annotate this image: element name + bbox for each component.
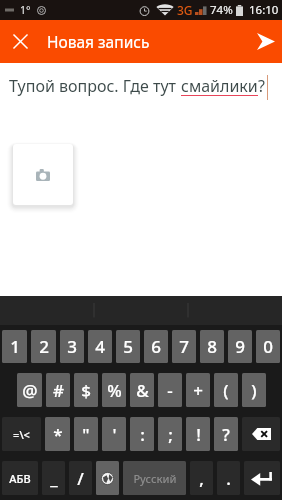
- staticText: +: [193, 379, 203, 402]
- button[interactable]: &: [130, 373, 154, 407]
- staticText: 0: [263, 335, 273, 358]
- staticText: /: [77, 467, 84, 490]
- button[interactable]: 4: [88, 330, 112, 363]
- button[interactable]: %: [102, 373, 126, 407]
- button[interactable]: =\<: [2, 417, 41, 451]
- button[interactable]: ": [74, 417, 98, 451]
- staticText: _: [50, 467, 58, 490]
- button[interactable]: Backspace: [242, 417, 280, 451]
- button[interactable]: :: [130, 417, 154, 451]
- button[interactable]: 2: [31, 330, 56, 363]
- button[interactable]: _: [42, 461, 65, 495]
- button[interactable]: #: [46, 373, 70, 407]
- button[interactable]: Русский: [123, 461, 186, 495]
- staticText: .: [226, 467, 231, 490]
- staticText: =\<: [13, 427, 30, 442]
- staticText: $: [81, 379, 91, 402]
- staticText: ': [112, 423, 117, 446]
- staticText: ): [251, 379, 257, 402]
- button[interactable]: .: [217, 461, 240, 495]
- button[interactable]: ): [242, 373, 266, 407]
- staticText: 1: [10, 335, 20, 358]
- staticText: ?: [258, 75, 265, 97]
- staticText: 3G: [177, 2, 193, 18]
- staticText: 16:10: [249, 2, 279, 18]
- staticText: 74%: [210, 2, 233, 18]
- button[interactable]: ?: [214, 417, 238, 451]
- button[interactable]: 5: [116, 330, 140, 363]
- staticText: Тупой вопрос. Где тут: [9, 75, 181, 97]
- staticText: 5: [123, 335, 133, 358]
- button[interactable]: (: [214, 373, 238, 407]
- staticText: Новая запись: [47, 31, 150, 52]
- staticText: Русский: [133, 471, 177, 486]
- staticText: @: [22, 379, 38, 402]
- staticText: ": [82, 423, 90, 446]
- button[interactable]: 3: [60, 330, 84, 363]
- button[interactable]: Close: [0, 20, 40, 63]
- staticText: 1°: [20, 3, 31, 17]
- button[interactable]: /: [69, 461, 92, 495]
- button[interactable]: *: [45, 417, 70, 451]
- button[interactable]: Add photo: [13, 144, 73, 205]
- staticText: !: [196, 423, 201, 446]
- button[interactable]: Change language: [96, 461, 119, 495]
- button[interactable]: -: [158, 373, 182, 407]
- staticText: АБВ: [9, 471, 31, 486]
- button[interactable]: 0: [256, 330, 280, 363]
- staticText: :: [140, 423, 145, 446]
- button[interactable]: 1: [2, 330, 27, 363]
- button[interactable]: АБВ: [2, 461, 38, 495]
- staticText: смайлики: [181, 75, 258, 97]
- button[interactable]: ;: [158, 417, 182, 451]
- staticText: 2: [39, 335, 49, 358]
- button[interactable]: 9: [228, 330, 252, 363]
- staticText: 7: [179, 335, 189, 358]
- button[interactable]: !: [186, 417, 210, 451]
- staticText: *: [53, 423, 63, 446]
- staticText: &: [136, 379, 149, 402]
- staticText: 4: [95, 335, 105, 358]
- button[interactable]: @: [17, 373, 42, 407]
- button[interactable]: +: [186, 373, 210, 407]
- button[interactable]: ,: [190, 461, 213, 495]
- staticText: 3: [67, 335, 77, 358]
- staticText: 6: [151, 335, 161, 358]
- staticText: ;: [168, 423, 173, 446]
- staticText: ,: [199, 467, 204, 490]
- staticText: 8: [207, 335, 217, 358]
- button[interactable]: Send: [249, 20, 282, 63]
- staticText: -: [167, 379, 173, 402]
- button[interactable]: Enter: [244, 461, 280, 495]
- button[interactable]: 7: [172, 330, 196, 363]
- button[interactable]: $: [74, 373, 98, 407]
- staticText: (: [223, 379, 229, 402]
- staticText: 9: [235, 335, 245, 358]
- button[interactable]: 8: [200, 330, 224, 363]
- staticText: #: [53, 379, 64, 402]
- staticText: %: [107, 379, 122, 402]
- button[interactable]: ': [102, 417, 126, 451]
- button[interactable]: 6: [144, 330, 168, 363]
- staticText: ?: [222, 423, 230, 446]
